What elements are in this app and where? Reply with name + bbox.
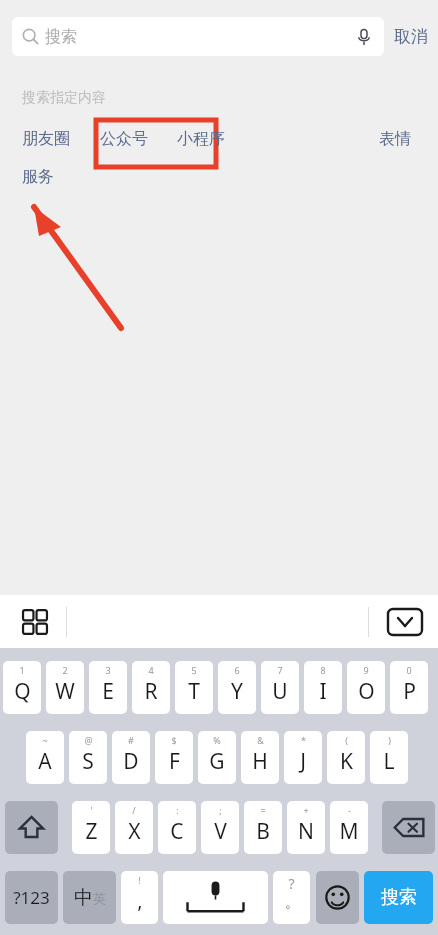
- button[interactable]: =: [244, 801, 282, 854]
- button[interactable]: 5: [175, 661, 213, 714]
- button[interactable]: ~: [26, 731, 64, 784]
- button[interactable]: 1: [3, 661, 41, 714]
- staticText: %: [213, 734, 221, 746]
- button[interactable]: &: [241, 731, 279, 784]
- button[interactable]: #: [112, 731, 150, 784]
- staticText: 7: [277, 664, 283, 676]
- staticText: R: [144, 677, 158, 706]
- button[interactable]: 6: [218, 661, 256, 714]
- staticText: &: [257, 734, 264, 746]
- staticText: D: [123, 747, 139, 776]
- staticText: (: [345, 734, 348, 746]
- staticText: 公众号: [100, 129, 148, 149]
- button[interactable]: 中: [63, 871, 116, 924]
- button[interactable]: %: [198, 731, 236, 784]
- button[interactable]: 搜索: [12, 17, 384, 56]
- staticText: #: [128, 734, 134, 746]
- button[interactable]: ): [370, 731, 408, 784]
- button[interactable]: ;: [201, 801, 239, 854]
- staticText: I: [319, 677, 327, 706]
- staticText: 朋友圈: [22, 129, 70, 149]
- staticText: 2: [62, 664, 68, 676]
- staticText: 中: [74, 886, 93, 910]
- button[interactable]: 取消: [394, 26, 428, 47]
- button[interactable]: 工具面板: [22, 609, 48, 635]
- staticText: 小程序: [177, 129, 225, 149]
- staticText: 4: [148, 664, 154, 676]
- staticText: ;: [219, 804, 222, 816]
- button[interactable]: /: [115, 801, 153, 854]
- staticText: 8: [320, 664, 326, 676]
- button[interactable]: 0: [390, 661, 428, 714]
- staticText: *: [301, 734, 306, 746]
- button[interactable]: 7: [261, 661, 299, 714]
- staticText: 3: [105, 664, 111, 676]
- staticText: ?123: [13, 886, 50, 909]
- button[interactable]: 9: [347, 661, 385, 714]
- button[interactable]: 空格: [163, 871, 268, 924]
- staticText: ): [388, 734, 391, 746]
- button[interactable]: 表情: [316, 871, 359, 924]
- button[interactable]: *: [284, 731, 322, 784]
- button[interactable]: 表情: [379, 129, 411, 149]
- staticText: ?: [288, 874, 295, 893]
- staticText: S: [82, 747, 94, 776]
- button[interactable]: Shift: [5, 801, 58, 854]
- staticText: N: [298, 817, 314, 846]
- button[interactable]: !: [121, 871, 158, 924]
- staticText: G: [209, 747, 225, 776]
- staticText: U: [272, 677, 288, 706]
- button[interactable]: ?: [273, 871, 310, 924]
- staticText: F: [169, 747, 180, 776]
- button[interactable]: 收起键盘: [388, 609, 422, 635]
- staticText: P: [403, 677, 416, 706]
- staticText: 0: [406, 664, 412, 676]
- button[interactable]: +: [287, 801, 325, 854]
- button[interactable]: 语音输入: [354, 27, 374, 47]
- staticText: 6: [234, 664, 240, 676]
- staticText: ': [90, 804, 93, 816]
- button[interactable]: $: [155, 731, 193, 784]
- staticText: 英: [93, 890, 106, 906]
- staticText: $: [171, 734, 177, 746]
- staticText: V: [214, 817, 227, 846]
- button[interactable]: (: [327, 731, 365, 784]
- staticText: :: [176, 804, 179, 816]
- button[interactable]: -: [330, 801, 368, 854]
- staticText: J: [300, 747, 306, 776]
- button[interactable]: 公众号: [100, 129, 148, 149]
- button[interactable]: 3: [89, 661, 127, 714]
- staticText: H: [252, 747, 268, 776]
- staticText: 9: [363, 664, 369, 676]
- button[interactable]: :: [158, 801, 196, 854]
- staticText: ,: [137, 887, 143, 914]
- staticText: 服务: [22, 167, 54, 187]
- staticText: Q: [14, 677, 31, 706]
- button[interactable]: ': [72, 801, 110, 854]
- button[interactable]: 搜索: [364, 871, 433, 924]
- staticText: 1: [19, 664, 25, 676]
- staticText: 取消: [394, 26, 428, 47]
- staticText: K: [340, 747, 353, 776]
- button[interactable]: 删除: [382, 801, 435, 854]
- button[interactable]: ?123: [5, 871, 58, 924]
- button[interactable]: 8: [304, 661, 342, 714]
- staticText: 5: [191, 664, 197, 676]
- staticText: Z: [85, 817, 98, 846]
- staticText: M: [339, 817, 359, 846]
- button[interactable]: 4: [132, 661, 170, 714]
- staticText: !: [138, 874, 141, 886]
- staticText: ~: [42, 734, 48, 746]
- button[interactable]: 朋友圈: [22, 129, 70, 149]
- button[interactable]: @: [69, 731, 107, 784]
- button[interactable]: 服务: [22, 167, 54, 187]
- button[interactable]: 2: [46, 661, 84, 714]
- staticText: 。: [285, 894, 299, 912]
- staticText: L: [383, 747, 395, 776]
- staticText: X: [128, 817, 141, 846]
- staticText: A: [38, 747, 52, 776]
- button[interactable]: 小程序: [177, 129, 225, 149]
- staticText: 搜索: [381, 886, 417, 909]
- staticText: 表情: [379, 129, 411, 149]
- staticText: -: [348, 804, 351, 816]
